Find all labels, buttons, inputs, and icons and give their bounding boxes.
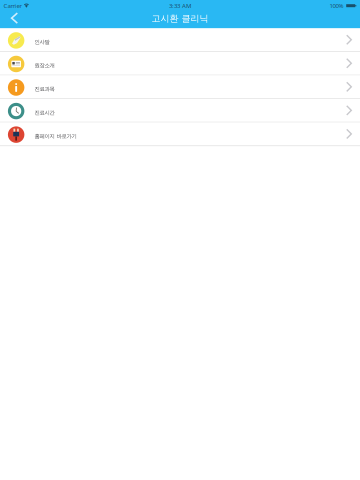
button[interactable]: 원장소개 bbox=[0, 52, 360, 75]
button[interactable]: 진료과목 bbox=[0, 75, 360, 99]
staticText: 진료과목 bbox=[34, 86, 54, 92]
staticText: 홈페이지 바로가기 bbox=[34, 133, 76, 140]
staticText: 3:33 AM bbox=[169, 2, 191, 10]
staticText: 진료시간 bbox=[34, 109, 54, 116]
button[interactable]: 홈페이지 바로가기 bbox=[0, 123, 360, 146]
staticText: Carrier bbox=[3, 2, 21, 10]
button[interactable]: Back bbox=[0, 12, 24, 28]
staticText: 100% bbox=[330, 2, 344, 10]
button[interactable]: 진료시간 bbox=[0, 99, 360, 123]
staticText: 원장소개 bbox=[34, 62, 54, 69]
staticText: 인사말 bbox=[34, 39, 49, 45]
staticText: 고시환 클리닉 bbox=[151, 13, 208, 24]
button[interactable]: 인사말 bbox=[0, 28, 360, 52]
